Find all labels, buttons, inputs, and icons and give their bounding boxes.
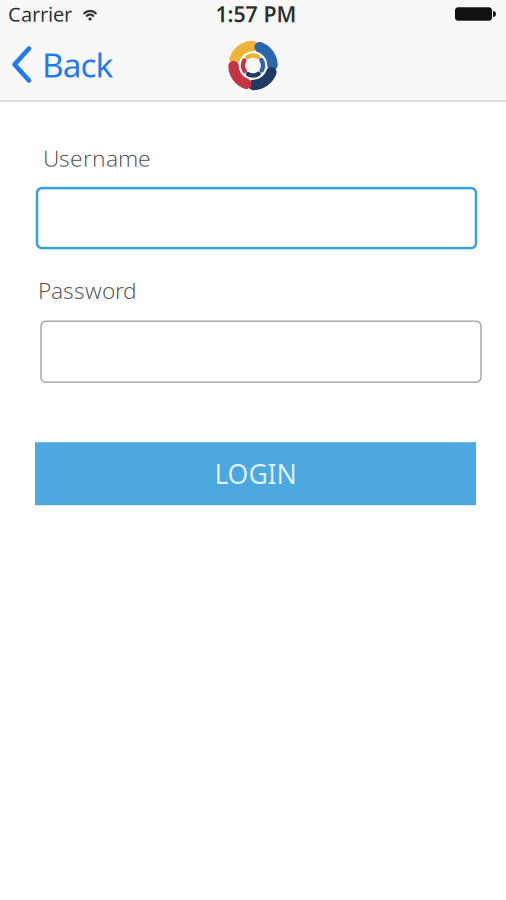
staticText: Back (42, 42, 113, 87)
staticText: Carrier (8, 1, 72, 27)
button[interactable]: LOGIN (35, 442, 476, 505)
button[interactable]: Username text field (37, 188, 476, 248)
staticText: 1:57 PM (215, 0, 296, 28)
button[interactable]: Password text field (41, 321, 481, 382)
staticText: LOGIN (214, 456, 296, 491)
staticText: Password (38, 275, 137, 305)
button[interactable]: Back (0, 42, 113, 89)
staticText: Username (43, 143, 151, 173)
